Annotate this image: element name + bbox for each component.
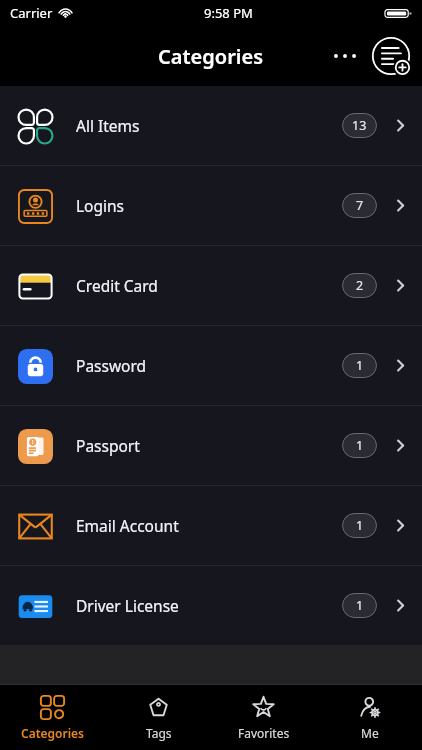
staticText: Credit Card: [76, 275, 158, 296]
staticText: 1: [356, 357, 364, 374]
button[interactable]: Logins: [0, 166, 422, 245]
button[interactable]: Email Account: [0, 486, 422, 565]
staticText: Logins: [76, 195, 125, 216]
button[interactable]: Add item: [368, 33, 414, 79]
button[interactable]: Categories: [0, 685, 105, 750]
button[interactable]: Driver License: [0, 566, 422, 645]
staticText: Me: [361, 725, 379, 741]
staticText: 2: [356, 277, 364, 294]
staticText: Favorites: [238, 725, 290, 741]
button[interactable]: Tags: [106, 685, 211, 750]
staticText: 1: [356, 437, 364, 454]
staticText: 13: [352, 117, 367, 134]
staticText: 1: [356, 597, 364, 614]
staticText: Categories: [21, 725, 85, 741]
button[interactable]: Passport: [0, 406, 422, 485]
staticText: 9:58 PM: [204, 4, 253, 22]
staticText: Password: [76, 355, 147, 376]
button[interactable]: Me: [317, 685, 422, 750]
staticText: Carrier: [10, 4, 53, 22]
button[interactable]: Password: [0, 326, 422, 405]
button[interactable]: More options: [324, 35, 366, 77]
staticText: 1: [356, 517, 364, 534]
staticText: Tags: [146, 725, 172, 741]
staticText: Driver License: [76, 595, 179, 616]
button[interactable]: All Items: [0, 86, 422, 165]
button[interactable]: Credit Card: [0, 246, 422, 325]
staticText: Categories: [158, 43, 264, 70]
staticText: Email Account: [76, 515, 179, 536]
staticText: 7: [356, 197, 364, 214]
staticText: Passport: [76, 435, 140, 456]
button[interactable]: Favorites: [211, 685, 316, 750]
staticText: All Items: [76, 115, 140, 136]
